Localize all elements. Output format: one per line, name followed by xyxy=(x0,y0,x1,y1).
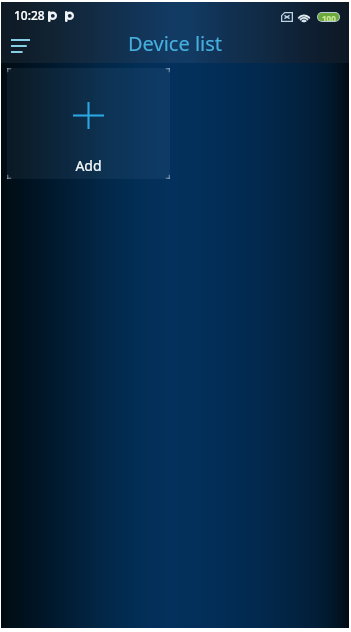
staticText: Device list xyxy=(128,30,222,57)
button[interactable]: Menu xyxy=(3,30,37,62)
staticText: Add xyxy=(75,156,102,175)
staticText: 100 xyxy=(322,13,336,21)
staticText: 10:28 xyxy=(14,7,45,23)
button[interactable]: Add xyxy=(7,68,170,179)
